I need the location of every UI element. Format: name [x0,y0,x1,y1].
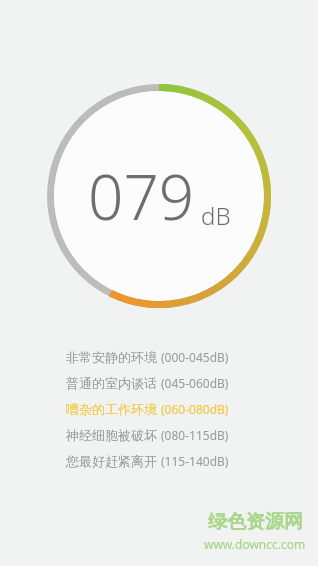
staticText: 您最好赶紧离开 [66,453,157,469]
staticText: (080-115dB) [161,427,229,443]
button[interactable]: 非常安静的环境 [66,344,229,370]
staticText: 神经细胞被破坏 [66,427,157,443]
staticText: dB [201,199,231,232]
button[interactable]: Sound level gauge 079 dB [47,84,271,308]
staticText: (000-045dB) [161,349,229,365]
staticText: 非常安静的环境 [66,349,157,365]
staticText: 079 [88,154,195,238]
button[interactable]: 您最好赶紧离开 [66,448,229,474]
staticText: 绿色资源网 [208,510,303,534]
staticText: 普通的室内谈话 [66,375,157,391]
staticText: (115-140dB) [161,453,229,469]
button[interactable]: 普通的室内谈话 [66,370,229,396]
button[interactable]: 神经细胞被破坏 [66,422,229,448]
staticText: www.downcc.com [204,536,306,552]
button[interactable]: 嘈杂的工作环境 [66,396,229,422]
staticText: (045-060dB) [161,375,229,391]
staticText: (060-080dB) [161,401,229,417]
staticText: 嘈杂的工作环境 [66,401,157,417]
